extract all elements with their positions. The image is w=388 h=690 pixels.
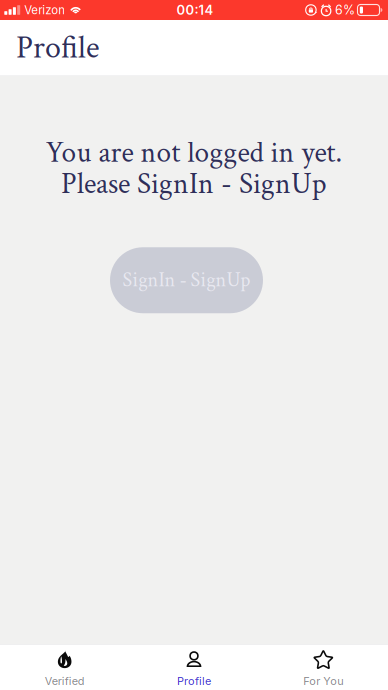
staticText: 00:14	[176, 2, 213, 18]
button[interactable]: Verified	[0, 644, 129, 690]
staticText: Profile	[16, 27, 99, 69]
staticText: Verified	[45, 674, 85, 688]
staticText: Verizon	[24, 3, 65, 17]
button[interactable]: SignIn - SignUp	[110, 247, 263, 313]
staticText: 6%	[335, 2, 355, 17]
staticText: SignIn - SignUp	[122, 267, 250, 293]
staticText: Profile	[177, 674, 211, 688]
staticText: Please SignIn - SignUp	[61, 165, 327, 203]
staticText: You are not logged in yet.	[45, 134, 342, 172]
button[interactable]: Profile	[129, 644, 259, 690]
staticText: For You	[303, 674, 343, 688]
button[interactable]: For You	[259, 644, 388, 690]
